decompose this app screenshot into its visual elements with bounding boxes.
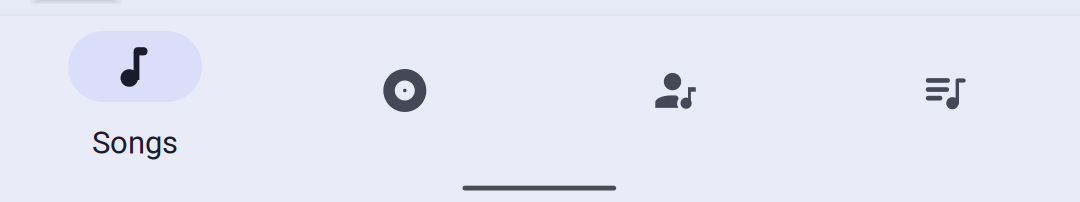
button[interactable]: Playlists bbox=[810, 16, 1080, 202]
button[interactable]: Songs bbox=[0, 16, 270, 202]
button[interactable]: Artists bbox=[540, 16, 810, 202]
button[interactable]: Albums bbox=[270, 16, 540, 202]
staticText: Songs bbox=[92, 125, 178, 161]
